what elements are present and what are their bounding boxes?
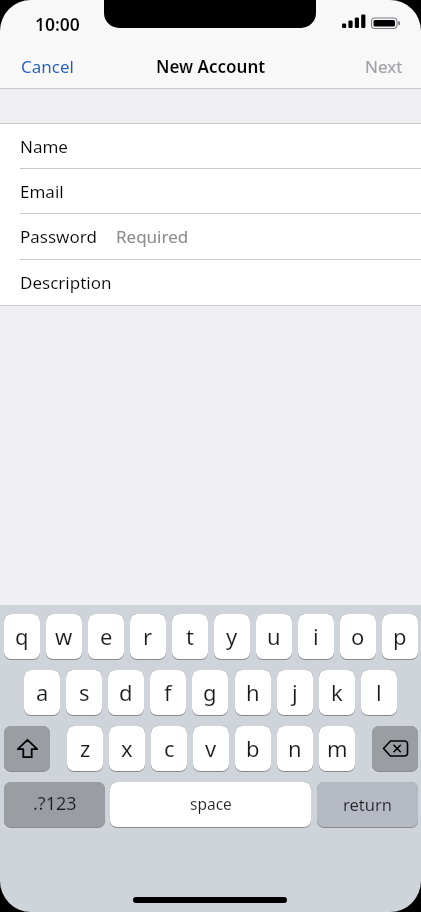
button[interactable]: o bbox=[340, 614, 376, 660]
staticText: s bbox=[79, 677, 90, 707]
staticText: w bbox=[55, 621, 73, 651]
button[interactable]: l bbox=[361, 670, 397, 716]
staticText: space bbox=[190, 793, 232, 814]
button[interactable] bbox=[4, 726, 50, 772]
staticText: e bbox=[100, 621, 113, 651]
staticText: x bbox=[121, 733, 133, 763]
staticText: g bbox=[203, 677, 217, 707]
staticText: u bbox=[267, 621, 281, 651]
staticText: f bbox=[164, 677, 172, 707]
staticText: d bbox=[119, 677, 133, 707]
staticText: i bbox=[313, 621, 319, 651]
button[interactable] bbox=[372, 726, 418, 772]
staticText: n bbox=[288, 733, 302, 763]
button[interactable]: b bbox=[235, 726, 271, 772]
button[interactable]: f bbox=[150, 670, 186, 716]
button[interactable]: a bbox=[24, 670, 60, 716]
button[interactable]: q bbox=[4, 614, 40, 660]
button[interactable]: p bbox=[382, 614, 418, 660]
staticText: m bbox=[327, 733, 348, 763]
staticText: Next bbox=[365, 55, 403, 78]
staticText: Cancel bbox=[21, 55, 74, 78]
staticText: v bbox=[205, 733, 217, 763]
button[interactable]: return bbox=[317, 782, 418, 828]
button[interactable]: Email bbox=[0, 169, 421, 213]
button[interactable]: Description bbox=[0, 260, 421, 305]
staticText: o bbox=[351, 621, 365, 651]
button[interactable]: k bbox=[319, 670, 355, 716]
staticText: Description bbox=[20, 271, 112, 294]
button[interactable]: space bbox=[110, 782, 311, 828]
button[interactable]: c bbox=[151, 726, 187, 772]
button[interactable]: z bbox=[67, 726, 103, 772]
button[interactable]: n bbox=[277, 726, 313, 772]
button[interactable]: m bbox=[319, 726, 355, 772]
staticText: .?123 bbox=[33, 791, 77, 816]
button[interactable]: x bbox=[109, 726, 145, 772]
staticText: j bbox=[292, 677, 298, 707]
button[interactable]: i bbox=[298, 614, 334, 660]
button[interactable]: r bbox=[130, 614, 166, 660]
button[interactable]: e bbox=[88, 614, 124, 660]
button[interactable]: g bbox=[192, 670, 228, 716]
staticText: k bbox=[331, 677, 343, 707]
staticText: l bbox=[376, 677, 382, 707]
button[interactable]: h bbox=[235, 670, 271, 716]
staticText: t bbox=[186, 621, 194, 651]
button[interactable]: .?123 bbox=[4, 782, 105, 828]
staticText: c bbox=[164, 733, 175, 763]
staticText: Email bbox=[20, 180, 64, 203]
staticText: New Account bbox=[156, 55, 266, 78]
staticText: Required bbox=[116, 225, 189, 248]
staticText: Name bbox=[20, 135, 68, 158]
staticText: r bbox=[143, 621, 153, 651]
staticText: 10:00 bbox=[35, 12, 80, 36]
button[interactable]: Password bbox=[0, 214, 421, 259]
button[interactable]: v bbox=[193, 726, 229, 772]
button[interactable]: t bbox=[172, 614, 208, 660]
button[interactable]: d bbox=[108, 670, 144, 716]
button[interactable]: w bbox=[46, 614, 82, 660]
staticText: h bbox=[246, 677, 260, 707]
button[interactable]: Name bbox=[0, 123, 421, 168]
button[interactable]: Next bbox=[360, 54, 405, 79]
staticText: y bbox=[226, 621, 238, 651]
button[interactable]: j bbox=[277, 670, 313, 716]
staticText: z bbox=[80, 733, 91, 763]
button[interactable]: y bbox=[214, 614, 250, 660]
button[interactable]: s bbox=[66, 670, 102, 716]
button[interactable]: u bbox=[256, 614, 292, 660]
staticText: b bbox=[246, 733, 260, 763]
staticText: return bbox=[343, 793, 392, 815]
staticText: q bbox=[15, 621, 29, 651]
button[interactable]: Cancel bbox=[16, 54, 80, 79]
staticText: p bbox=[393, 621, 407, 651]
staticText: a bbox=[36, 677, 49, 707]
staticText: Password bbox=[20, 225, 97, 248]
